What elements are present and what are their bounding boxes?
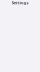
staticText: Settings bbox=[11, 0, 28, 5]
